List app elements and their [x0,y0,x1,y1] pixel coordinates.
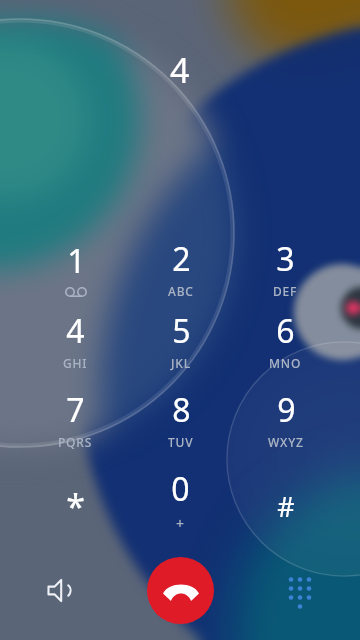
button[interactable]: 8 [128,376,233,461]
button[interactable]: 9 [233,376,338,461]
staticText: * [66,483,85,529]
staticText: WXYZ [268,434,304,450]
button[interactable]: End call [147,557,214,624]
staticText: 1 [67,239,86,283]
staticText: 9 [277,388,296,432]
staticText: 8 [172,388,191,432]
button[interactable]: 3 [233,232,338,304]
button[interactable]: 6 [233,304,338,376]
staticText: GHI [63,355,88,371]
staticText: JKL [171,355,191,371]
staticText: 4 [170,47,190,93]
staticText: # [277,488,295,525]
staticText: 6 [276,309,295,353]
button[interactable]: 5 [128,304,233,376]
staticText: 2 [172,237,191,281]
staticText: TUV [168,434,194,450]
button[interactable]: 0 [128,461,233,539]
button[interactable]: 4 [23,304,128,376]
staticText: 7 [66,388,85,432]
staticText: + [176,514,185,533]
button[interactable]: Show dialpad [240,540,360,640]
staticText: 3 [276,237,295,281]
staticText: 4 [66,309,85,353]
button[interactable]: * [23,461,128,539]
button[interactable]: 7 [23,376,128,461]
staticText: DEF [273,283,298,299]
button[interactable]: Speaker [0,540,120,640]
staticText: 0 [171,467,190,511]
staticText: PQRS [58,434,93,450]
staticText: MNO [269,355,302,371]
staticText: ABC [168,283,194,299]
button[interactable]: # [233,461,338,539]
button[interactable]: 2 [128,232,233,304]
button[interactable]: 1 [23,232,128,304]
staticText: 5 [172,309,191,353]
